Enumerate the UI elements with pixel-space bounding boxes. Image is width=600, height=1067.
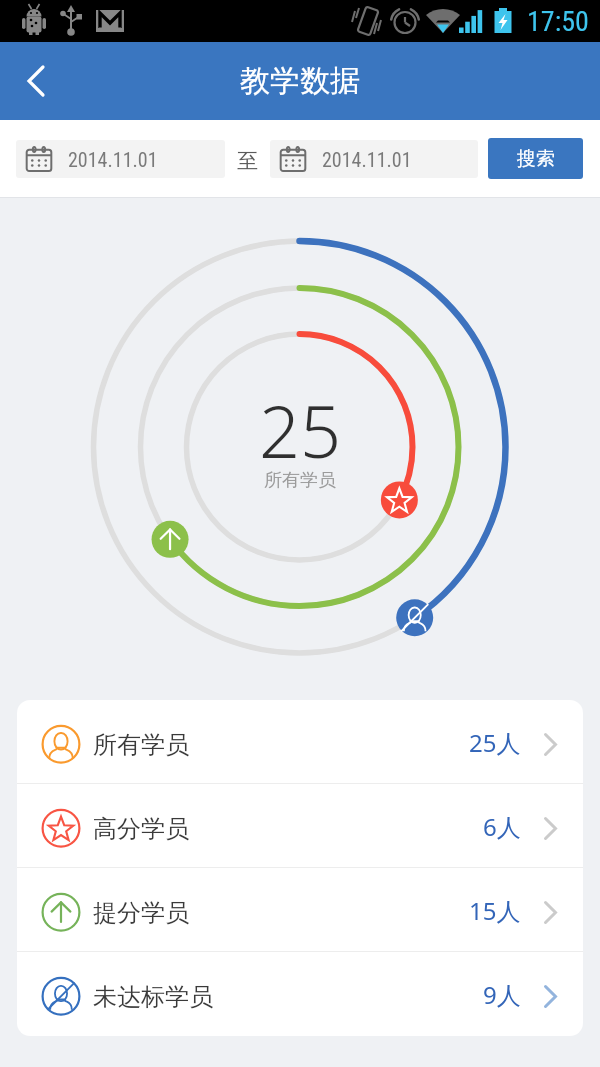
staticText: 6人 bbox=[483, 810, 521, 843]
button[interactable]: 2014.11.01 bbox=[16, 140, 225, 178]
staticText: 教学数据 bbox=[240, 62, 360, 100]
staticText: 高分学员 bbox=[93, 814, 189, 844]
button[interactable]: 搜索 bbox=[488, 138, 583, 179]
staticText: 2014.11.01 bbox=[68, 148, 158, 171]
staticText: 25人 bbox=[469, 726, 521, 759]
staticText: 未达标学员 bbox=[93, 982, 213, 1012]
button[interactable]: 2014.11.01 bbox=[270, 140, 478, 178]
button[interactable]: 高分学员 bbox=[17, 784, 583, 868]
staticText: 提分学员 bbox=[93, 898, 189, 928]
staticText: 至 bbox=[237, 148, 258, 174]
staticText: 搜索 bbox=[517, 147, 555, 171]
button[interactable]: Back bbox=[0, 42, 72, 120]
button[interactable]: 所有学员 bbox=[17, 700, 583, 784]
staticText: 15人 bbox=[469, 894, 521, 927]
staticText: 9人 bbox=[483, 978, 521, 1011]
staticText: 17:50 bbox=[527, 5, 589, 38]
staticText: 25 bbox=[259, 381, 342, 479]
staticText: 2014.11.01 bbox=[322, 148, 412, 171]
button[interactable]: 未达标学员 bbox=[17, 952, 583, 1036]
staticText: 所有学员 bbox=[264, 469, 336, 492]
button[interactable]: 提分学员 bbox=[17, 868, 583, 952]
staticText: 所有学员 bbox=[93, 730, 189, 760]
